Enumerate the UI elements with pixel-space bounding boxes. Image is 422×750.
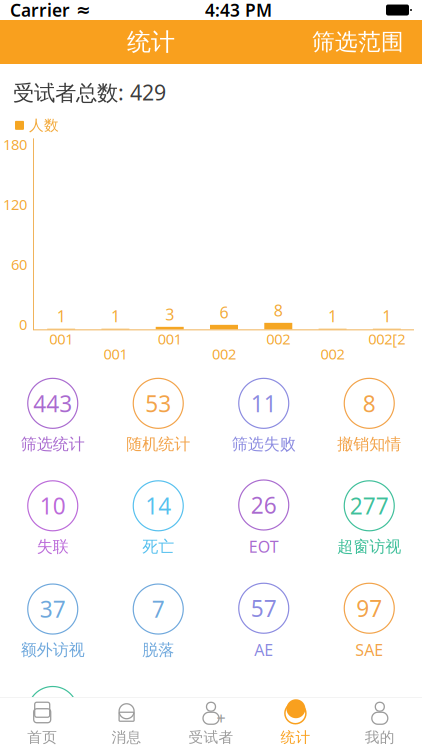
staticText: 002 bbox=[212, 344, 236, 364]
staticText: 我的 bbox=[365, 728, 395, 746]
button[interactable]: 10 bbox=[0, 477, 105, 560]
button[interactable]: 7 bbox=[105, 580, 211, 664]
staticText: 10 bbox=[40, 491, 66, 521]
staticText: 1 bbox=[111, 305, 120, 327]
staticText: 002 bbox=[321, 344, 345, 364]
button[interactable]: 37 bbox=[0, 580, 105, 664]
staticText: SAE bbox=[355, 639, 383, 660]
staticText: AE bbox=[254, 639, 273, 660]
staticText: 277 bbox=[350, 491, 389, 521]
button[interactable]: + bbox=[169, 695, 253, 750]
staticText: 受试者总数: 429 bbox=[13, 78, 166, 106]
button[interactable]: 11 bbox=[211, 374, 316, 458]
button[interactable]: 我的 bbox=[338, 695, 422, 750]
staticText: 180 bbox=[3, 135, 27, 154]
staticText: 统计 bbox=[280, 728, 310, 746]
staticText: 001 bbox=[103, 344, 127, 364]
button[interactable]: 14 bbox=[105, 477, 211, 560]
staticText: 4:43 PM bbox=[205, 0, 272, 21]
staticText: 筛选统计 bbox=[21, 434, 85, 454]
staticText: 7 bbox=[152, 594, 165, 624]
staticText: 8 bbox=[274, 300, 283, 321]
staticText: 11 bbox=[251, 388, 277, 418]
button[interactable]: 统计 bbox=[253, 695, 338, 750]
button[interactable]: 消息 bbox=[84, 695, 169, 750]
staticText: Carrier bbox=[10, 0, 70, 21]
staticText: 002 bbox=[266, 329, 290, 349]
staticText: 443 bbox=[33, 388, 72, 418]
staticText: 57 bbox=[251, 593, 277, 623]
staticText: + bbox=[216, 708, 225, 729]
staticText: 14 bbox=[145, 491, 171, 521]
staticText: 人数 bbox=[29, 116, 59, 134]
staticText: 1 bbox=[328, 305, 337, 327]
staticText: 8 bbox=[363, 388, 376, 418]
staticText: 0 bbox=[19, 315, 27, 334]
button[interactable]: 443 bbox=[0, 374, 105, 458]
staticText: ≈ bbox=[70, 0, 91, 20]
staticText: 12 bbox=[40, 696, 66, 726]
staticText: 随机统计 bbox=[126, 434, 190, 454]
staticText: 002[2 bbox=[368, 329, 405, 349]
staticText: 死亡 bbox=[142, 537, 174, 556]
staticText: 1 bbox=[57, 305, 66, 327]
staticText: 脱落 bbox=[142, 640, 174, 660]
button[interactable]: 12 bbox=[0, 682, 105, 750]
staticText: 1 bbox=[382, 305, 391, 327]
staticText: 消息 bbox=[112, 728, 142, 746]
staticText: 失联 bbox=[37, 537, 69, 556]
staticText: 3 bbox=[165, 304, 174, 325]
button[interactable]: 97 bbox=[316, 579, 422, 664]
staticText: 首页 bbox=[27, 728, 57, 746]
staticText: 001 bbox=[158, 329, 182, 349]
staticText: 筛选范围 bbox=[312, 28, 404, 56]
staticText: 53 bbox=[145, 388, 171, 418]
staticText: 001 bbox=[49, 329, 73, 349]
button[interactable]: 57 bbox=[211, 579, 316, 664]
staticText: 120 bbox=[3, 195, 27, 214]
button[interactable]: 26 bbox=[211, 476, 316, 561]
button[interactable]: 8 bbox=[316, 374, 422, 458]
button[interactable]: 筛选范围 bbox=[302, 22, 414, 62]
staticText: 超窗访视 bbox=[337, 537, 401, 556]
button[interactable]: 53 bbox=[105, 374, 211, 458]
button[interactable]: 277 bbox=[316, 477, 422, 560]
staticText: EOT bbox=[249, 536, 279, 557]
staticText: 6 bbox=[219, 302, 228, 323]
staticText: 撤销知情 bbox=[337, 434, 401, 454]
button[interactable]: 首页 bbox=[0, 695, 84, 750]
staticText: 37 bbox=[40, 594, 66, 624]
staticText: 受试者 bbox=[188, 728, 233, 746]
staticText: 60 bbox=[11, 255, 27, 274]
staticText: 97 bbox=[356, 593, 382, 623]
staticText: 26 bbox=[251, 490, 277, 520]
staticText: 筛选失败 bbox=[232, 434, 296, 454]
staticText: 统计 bbox=[127, 27, 175, 57]
staticText: 额外访视 bbox=[21, 640, 85, 660]
